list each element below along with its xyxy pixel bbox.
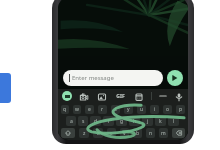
button[interactable]: More xyxy=(158,91,168,101)
button[interactable]: Previous xyxy=(0,73,11,103)
staticText: o xyxy=(166,106,170,113)
button[interactable]: g xyxy=(116,116,127,126)
button[interactable]: n xyxy=(146,128,155,138)
button[interactable]: m xyxy=(159,128,168,138)
button[interactable]: Photos xyxy=(96,91,107,102)
button[interactable]: s xyxy=(78,116,88,126)
button[interactable]: Voice input xyxy=(173,91,184,102)
button[interactable]: i xyxy=(150,105,159,114)
staticText: k xyxy=(159,118,162,125)
staticText: l xyxy=(173,118,175,125)
staticText: Enter message xyxy=(72,74,114,82)
button[interactable]: Calendar xyxy=(133,91,144,102)
staticText: n xyxy=(149,130,153,137)
button[interactable]: c xyxy=(107,128,116,138)
staticText: y xyxy=(127,106,130,113)
staticText: p xyxy=(179,106,183,113)
staticText: d xyxy=(94,118,98,125)
staticText: f xyxy=(108,118,110,125)
button[interactable]: e xyxy=(85,105,94,114)
staticText: a xyxy=(70,118,73,125)
button[interactable]: Keyboard xyxy=(62,91,72,101)
staticText: t xyxy=(115,106,117,113)
button[interactable]: Send xyxy=(167,70,183,86)
staticText: z xyxy=(83,130,86,137)
button[interactable]: p xyxy=(176,105,185,114)
button[interactable]: b xyxy=(133,128,142,138)
button[interactable]: Backspace xyxy=(172,128,185,138)
button[interactable]: r xyxy=(98,105,107,114)
button[interactable]: f xyxy=(103,116,114,126)
button[interactable]: w xyxy=(73,105,81,114)
staticText: GIF xyxy=(116,93,125,100)
button[interactable]: Shift xyxy=(61,128,75,138)
staticText: g xyxy=(120,118,124,125)
staticText: u xyxy=(140,106,144,113)
button[interactable]: x xyxy=(93,128,103,138)
staticText: r xyxy=(101,106,104,113)
button[interactable]: q xyxy=(61,105,69,114)
button[interactable]: u xyxy=(137,105,146,114)
button[interactable]: GIF xyxy=(114,91,126,102)
staticText: c xyxy=(110,130,113,137)
button[interactable]: d xyxy=(90,116,101,126)
button[interactable]: o xyxy=(163,105,172,114)
button[interactable]: j xyxy=(142,116,153,126)
button[interactable]: y xyxy=(124,105,133,114)
button[interactable]: Camera xyxy=(78,91,89,102)
button[interactable]: h xyxy=(129,116,140,126)
button[interactable]: v xyxy=(120,128,129,138)
staticText: m xyxy=(161,130,166,137)
staticText: h xyxy=(133,118,137,125)
staticText: e xyxy=(88,106,91,113)
button[interactable]: t xyxy=(111,105,120,114)
staticText: s xyxy=(82,118,85,125)
staticText: v xyxy=(123,130,126,137)
button[interactable]: k xyxy=(155,116,166,126)
button[interactable]: a xyxy=(66,116,76,126)
staticText: j xyxy=(147,118,149,125)
staticText: b xyxy=(136,130,140,137)
staticText: w xyxy=(75,106,79,113)
button[interactable]: Enter message xyxy=(63,70,163,86)
staticText: x xyxy=(97,130,100,137)
staticText: q xyxy=(63,106,67,113)
button[interactable]: l xyxy=(168,116,179,126)
staticText: i xyxy=(154,106,156,113)
button[interactable]: z xyxy=(79,128,89,138)
